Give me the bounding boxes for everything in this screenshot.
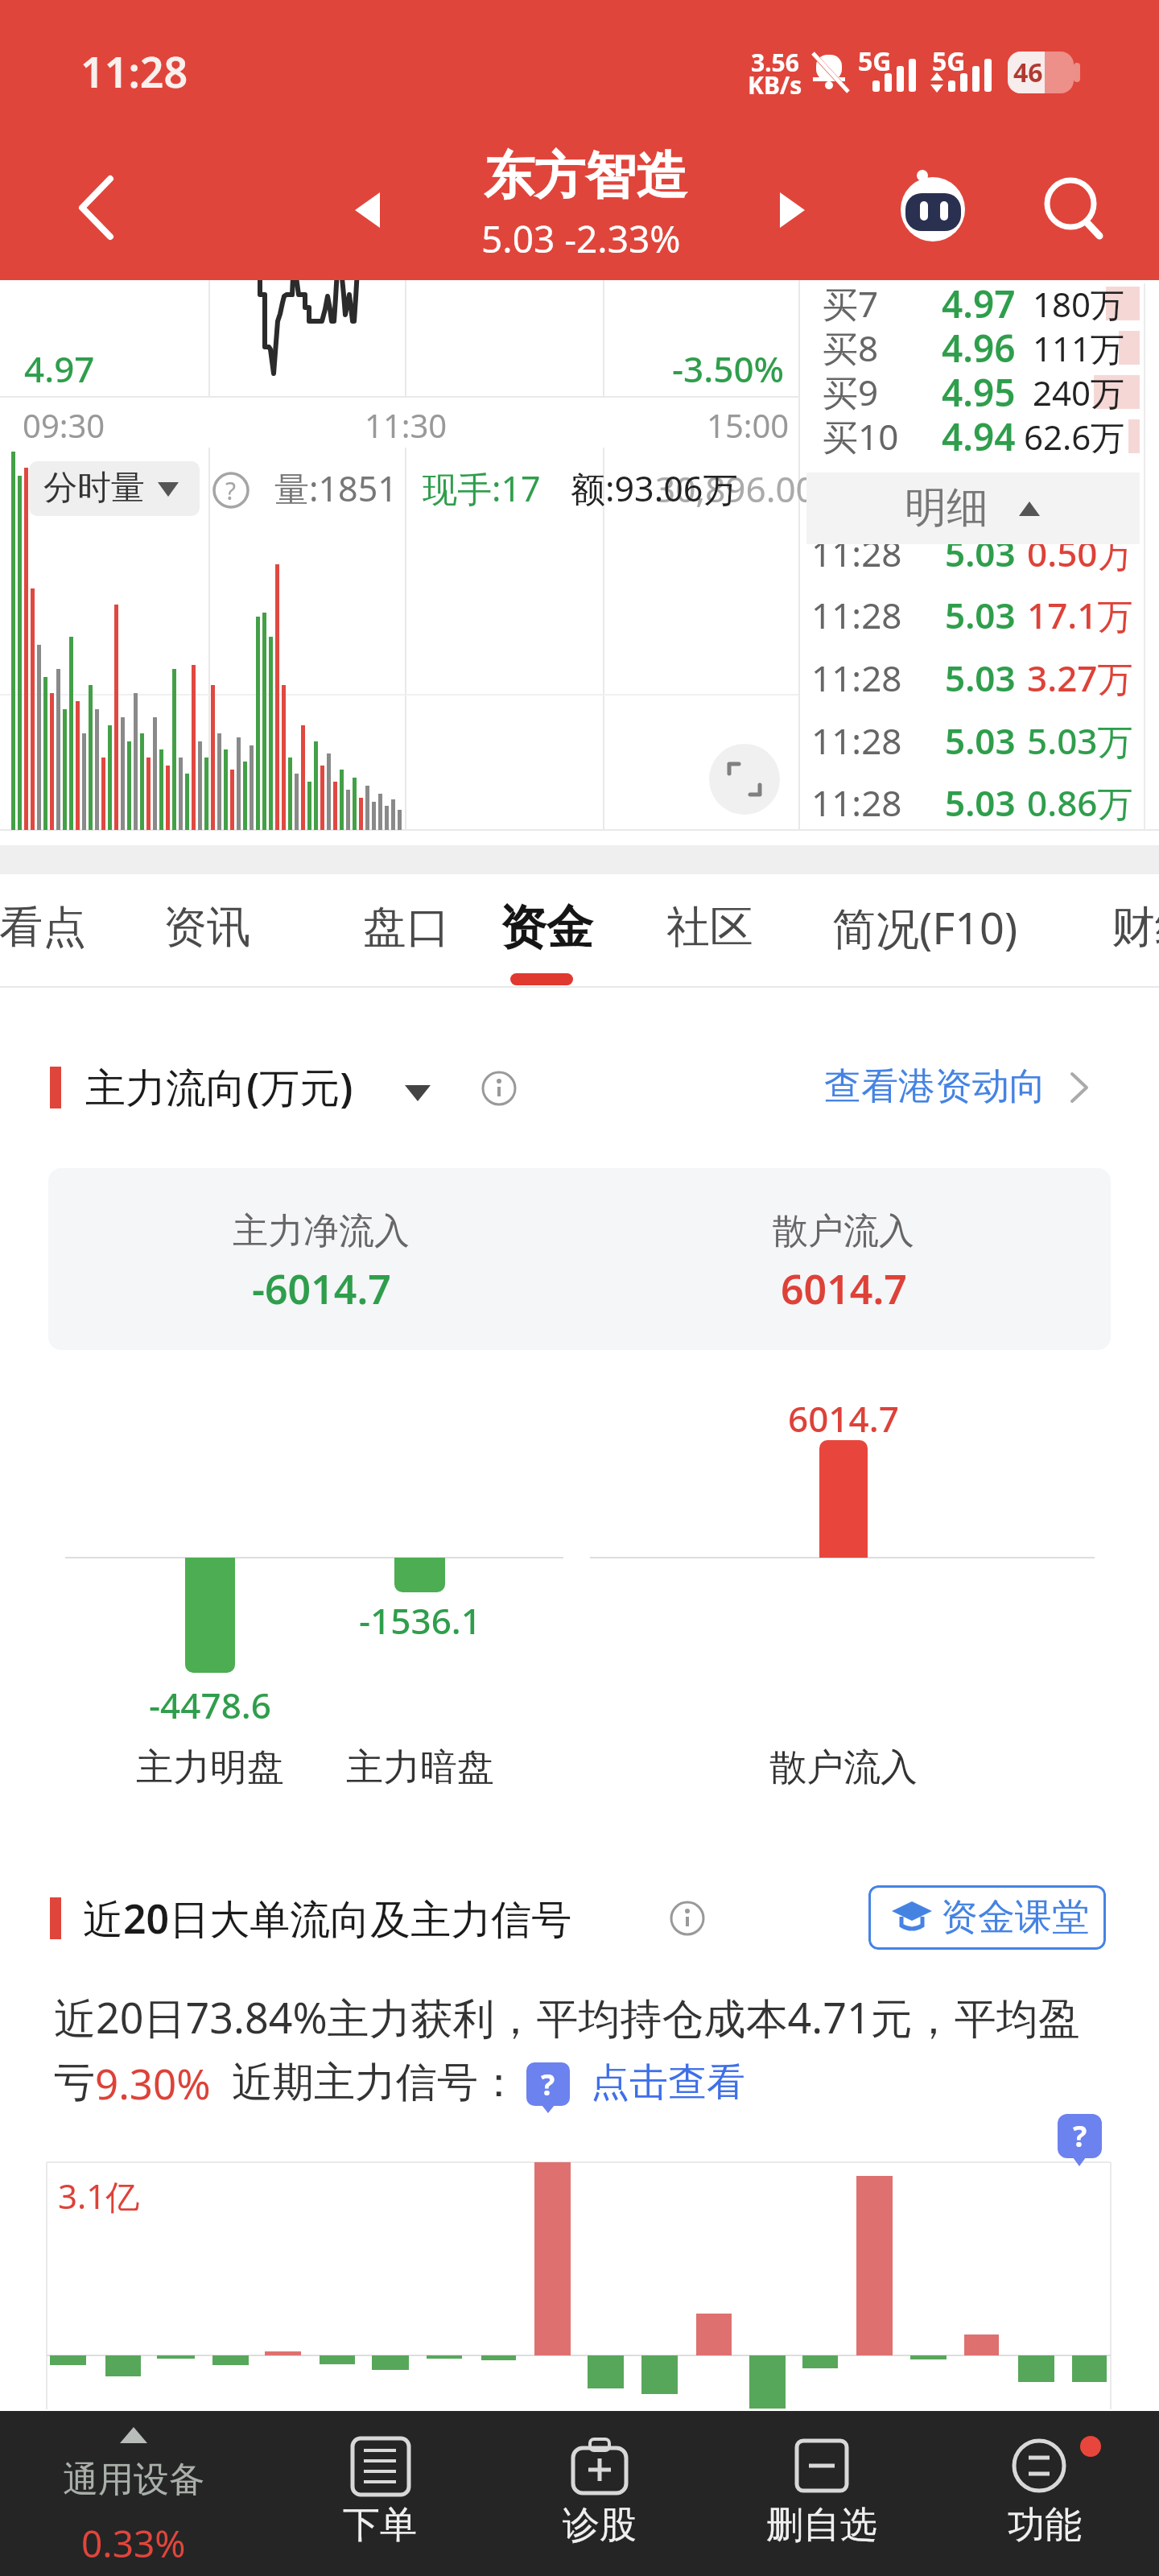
button[interactable]: 盘口 xyxy=(286,879,527,976)
staticText: 诊股 xyxy=(563,2502,637,2549)
staticText: 资金 xyxy=(500,898,593,957)
button[interactable] xyxy=(1051,2107,1108,2167)
staticText: 11:30 xyxy=(365,403,448,447)
button[interactable] xyxy=(724,2415,918,2572)
staticText: 近20日73.84%主力获利，平均持仓成本4.71元，平均盈 xyxy=(54,1988,1080,2046)
button[interactable] xyxy=(805,370,1145,414)
staticText: 5.03 xyxy=(945,591,1016,639)
staticText: 通用设备 xyxy=(63,2458,204,2502)
button[interactable]: 资讯 xyxy=(86,879,328,976)
button[interactable] xyxy=(805,591,1145,639)
staticText: 5G xyxy=(932,43,966,79)
staticText: 删自选 xyxy=(766,2502,877,2549)
staticText: 主力流向(万元) xyxy=(85,1059,353,1114)
button[interactable] xyxy=(342,181,398,242)
button[interactable] xyxy=(765,181,821,242)
button[interactable] xyxy=(1038,169,1111,250)
staticText: 6014.7 xyxy=(788,1394,899,1443)
staticText: 9.30% xyxy=(95,2055,211,2111)
staticText: 11:28 xyxy=(811,529,902,577)
staticText: 111万 xyxy=(1033,325,1125,371)
staticText: 看点 xyxy=(0,900,86,955)
button[interactable] xyxy=(805,282,1145,325)
staticText: 11:28 xyxy=(811,778,902,827)
staticText: 功能 xyxy=(1008,2502,1082,2549)
button[interactable]: 财经 xyxy=(1034,879,1159,976)
staticText: -3.50% xyxy=(672,345,785,393)
button[interactable] xyxy=(709,744,780,815)
staticText: 4.97 xyxy=(942,279,1016,329)
button[interactable] xyxy=(805,654,1145,702)
button[interactable] xyxy=(520,2056,576,2114)
staticText: ? xyxy=(541,2065,555,2104)
staticText: 15:00 xyxy=(707,403,790,447)
button[interactable]: 社区 xyxy=(589,879,831,976)
button[interactable] xyxy=(290,2415,475,2572)
staticText: 3.1亿 xyxy=(58,2173,140,2219)
button[interactable]: 点击查看 xyxy=(591,2050,760,2115)
staticText: 11:28 xyxy=(811,654,902,702)
staticText: 11:28 xyxy=(811,591,902,639)
button[interactable] xyxy=(56,161,145,258)
button[interactable]: 看点 xyxy=(0,879,163,976)
button[interactable]: 简况(F10) xyxy=(804,879,1046,976)
button[interactable]: 资金 xyxy=(474,879,619,976)
staticText: 主力明盘 xyxy=(136,1744,284,1791)
staticText: 5G xyxy=(858,43,892,79)
staticText: 资讯 xyxy=(163,900,250,955)
button[interactable] xyxy=(72,1059,443,1117)
staticText: -6014.7 xyxy=(252,1261,391,1316)
staticText: 4.97 xyxy=(24,345,95,393)
button[interactable] xyxy=(805,529,1145,577)
staticText: 额:93.06万 xyxy=(571,464,738,512)
button[interactable] xyxy=(805,326,1145,369)
staticText: -4478.6 xyxy=(149,1681,271,1729)
staticText: 180万 xyxy=(1033,281,1125,327)
staticText: 240万 xyxy=(1033,369,1125,415)
staticText: 简况(F10) xyxy=(832,898,1018,957)
button[interactable] xyxy=(805,716,1145,765)
staticText: 现手:17 xyxy=(423,464,541,512)
staticText: 主力净流入 xyxy=(233,1209,410,1253)
staticText: ? xyxy=(1073,2116,1087,2156)
staticText: 0.86万 xyxy=(1027,778,1133,827)
staticText: 买8 xyxy=(823,324,879,372)
staticText: 3.56 xyxy=(751,46,799,79)
staticText: 分时量 xyxy=(43,467,145,510)
button[interactable] xyxy=(805,415,1145,458)
staticText: 散户流入 xyxy=(773,1209,914,1253)
staticText: 量:1851 xyxy=(274,464,398,512)
staticText: 62.6万 xyxy=(1024,414,1125,460)
staticText: 东方智造 xyxy=(484,144,687,208)
button[interactable] xyxy=(806,473,1140,544)
staticText: 社区 xyxy=(666,900,753,955)
staticText: 近期主力信号： xyxy=(232,2057,519,2108)
staticText: 4.95 xyxy=(942,367,1016,418)
staticText: 09:30 xyxy=(23,403,105,447)
staticText: 散户流入 xyxy=(769,1744,918,1791)
staticText: 查看港资动向 xyxy=(824,1063,1046,1110)
staticText: 买9 xyxy=(823,368,879,416)
staticText: 5.03 xyxy=(945,529,1016,577)
staticText: 46 xyxy=(1013,55,1043,90)
button[interactable]: 查看港资动向 xyxy=(805,1055,1095,1119)
button[interactable] xyxy=(868,1885,1106,1950)
button[interactable] xyxy=(29,461,200,516)
staticText: 5.03 xyxy=(945,778,1016,827)
staticText: 5.03 xyxy=(945,654,1016,702)
staticText: 0.50万 xyxy=(1027,529,1133,577)
staticText: -1536.1 xyxy=(359,1596,481,1645)
staticText: 近20日大单流向及主力信号 xyxy=(83,1891,572,1946)
staticText: 17.1万 xyxy=(1027,591,1133,639)
staticText: 点击查看 xyxy=(591,2058,745,2107)
button[interactable] xyxy=(805,778,1145,827)
button[interactable] xyxy=(950,2415,1143,2572)
button[interactable] xyxy=(24,2415,250,2572)
staticText: 5.03万 xyxy=(1027,716,1133,765)
staticText: 买7 xyxy=(823,279,879,328)
staticText: 6014.7 xyxy=(781,1261,907,1316)
button[interactable] xyxy=(893,169,974,250)
staticText: 资金课堂 xyxy=(941,1894,1089,1941)
button[interactable] xyxy=(507,2415,692,2572)
staticText: 3.27万 xyxy=(1027,654,1133,702)
